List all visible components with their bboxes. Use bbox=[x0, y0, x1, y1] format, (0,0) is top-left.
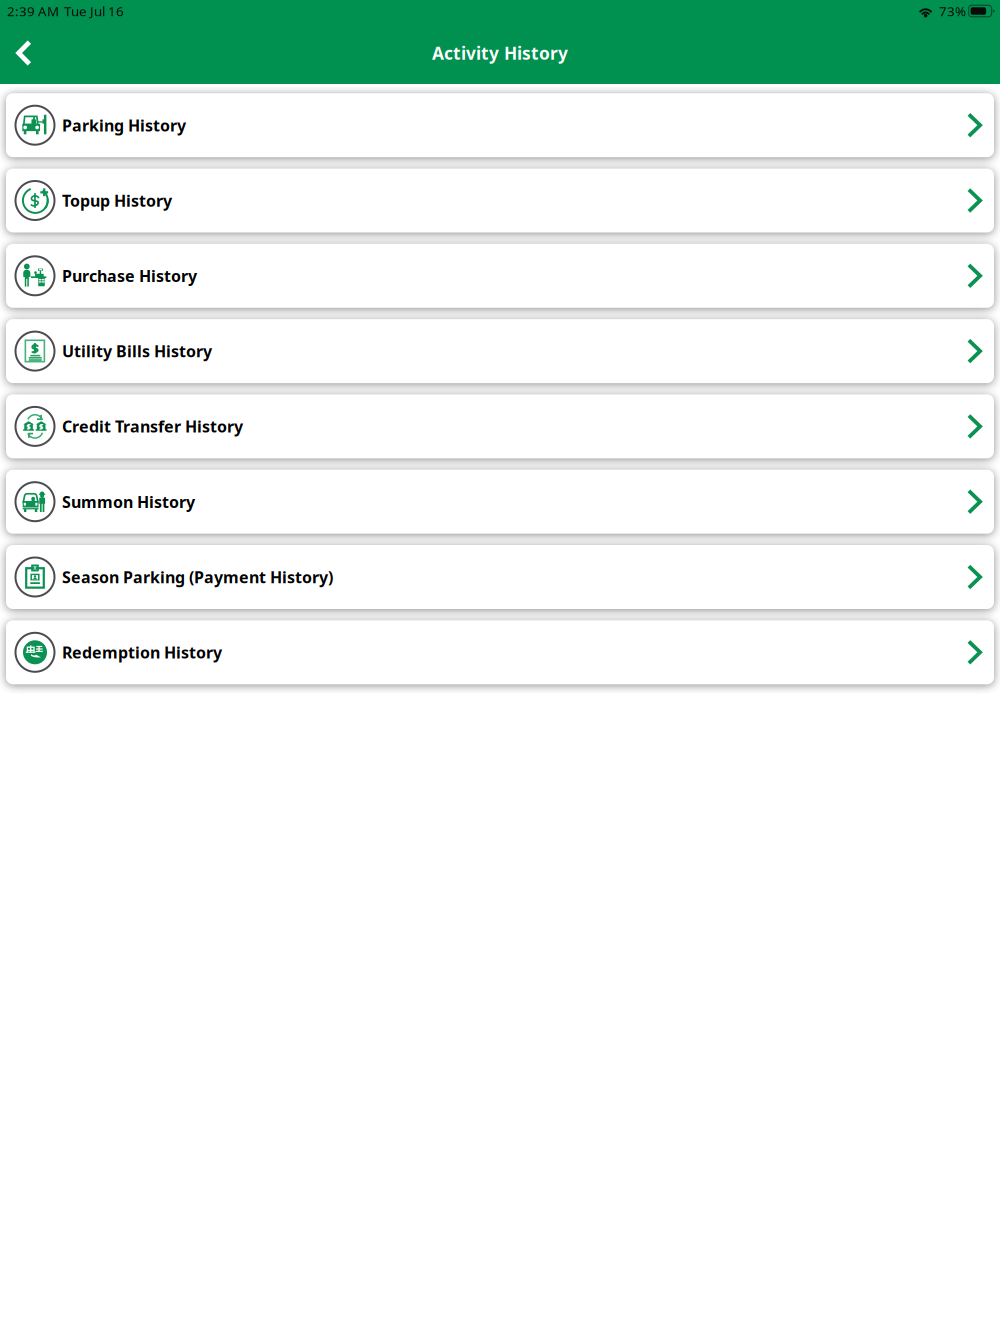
button[interactable]: Back bbox=[0, 25, 48, 81]
staticText: Redemption History bbox=[62, 642, 222, 663]
staticText: Utility Bills History bbox=[62, 340, 212, 362]
button[interactable]: Redemption History bbox=[6, 620, 994, 684]
button[interactable]: Purchase History bbox=[6, 244, 994, 308]
staticText: Topup History bbox=[62, 190, 172, 211]
staticText: Tue Jul 16 bbox=[64, 2, 124, 20]
staticText: Credit Transfer History bbox=[62, 416, 243, 437]
button[interactable]: Topup History bbox=[6, 168, 994, 232]
staticText: Parking History bbox=[62, 115, 186, 136]
staticText: Activity History bbox=[432, 41, 568, 64]
button[interactable]: Season Parking (Payment History) bbox=[6, 545, 994, 609]
button[interactable]: Summon History bbox=[6, 470, 994, 534]
button[interactable]: Credit Transfer History bbox=[6, 394, 994, 458]
staticText: Purchase History bbox=[62, 265, 197, 286]
staticText: 73% bbox=[939, 2, 966, 20]
button[interactable]: Parking History bbox=[6, 93, 994, 157]
staticText: Season Parking (Payment History) bbox=[62, 566, 333, 588]
staticText: 2:39 AM bbox=[7, 2, 59, 20]
button[interactable]: Utility Bills History bbox=[6, 319, 994, 383]
staticText: Summon History bbox=[62, 491, 195, 512]
